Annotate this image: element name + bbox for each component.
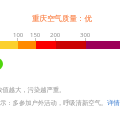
- button[interactable]: 重庆空气质量：优: [32, 14, 92, 23]
- staticText: 示：多参加户外活动，呼吸清新空气。: [0, 99, 108, 107]
- staticText: 数值越大，污染越严重。: [0, 86, 66, 94]
- staticText: 300: [80, 31, 91, 39]
- staticText: 150: [30, 31, 41, 39]
- staticText: 100: [13, 31, 24, 39]
- button[interactable]: 详情: [107, 99, 120, 107]
- staticText: 200: [50, 31, 61, 39]
